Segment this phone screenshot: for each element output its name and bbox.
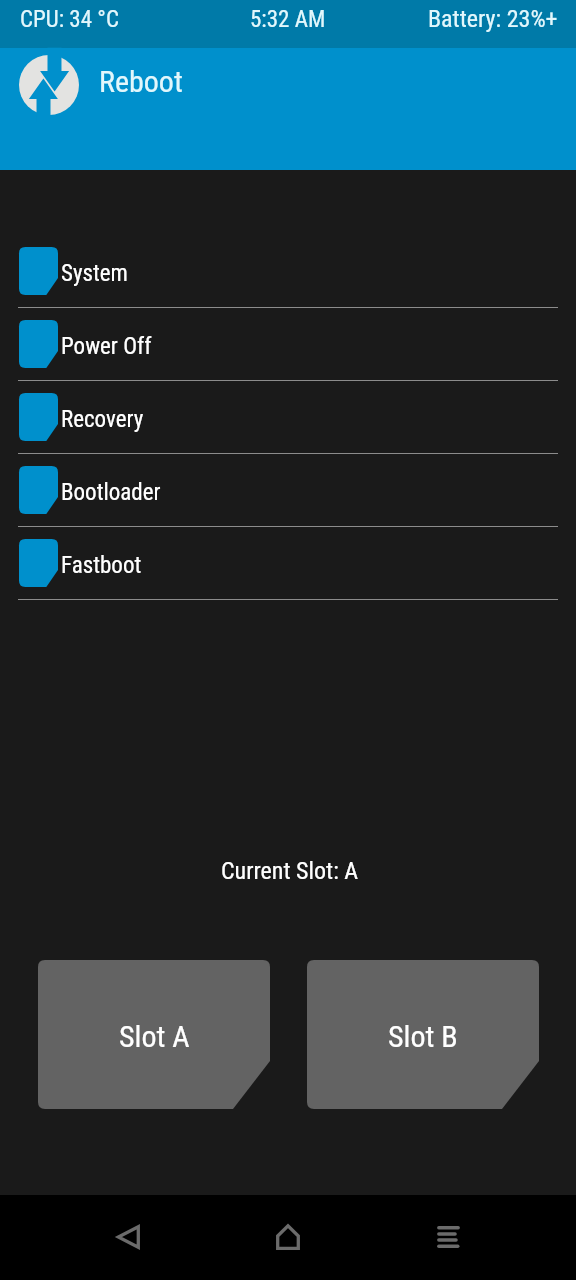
button[interactable]: Slot B — [307, 960, 539, 1109]
staticText: Current Slot: A — [221, 857, 359, 885]
staticText: Slot A — [119, 1019, 190, 1054]
staticText: Bootloader — [61, 479, 161, 506]
staticText: Battery: 23%+ — [428, 5, 558, 33]
button[interactable]: Home — [259, 1208, 317, 1266]
staticText: Recovery — [61, 406, 144, 433]
button[interactable]: System — [0, 235, 576, 308]
button[interactable]: Fastboot — [0, 527, 576, 600]
button[interactable]: Recent apps — [419, 1208, 477, 1266]
button[interactable]: Back — [99, 1208, 157, 1266]
staticText: System — [61, 260, 128, 287]
staticText: 5:32 AM — [250, 6, 326, 33]
button[interactable]: Power Off — [0, 308, 576, 381]
button[interactable]: Bootloader — [0, 454, 576, 527]
staticText: Power Off — [61, 333, 152, 360]
staticText: CPU: 34 °C — [20, 6, 119, 33]
staticText: Reboot — [99, 64, 183, 99]
staticText: Slot B — [388, 1019, 458, 1054]
button[interactable]: Slot A — [38, 960, 270, 1109]
button[interactable]: Recovery — [0, 381, 576, 454]
staticText: Fastboot — [61, 552, 142, 579]
